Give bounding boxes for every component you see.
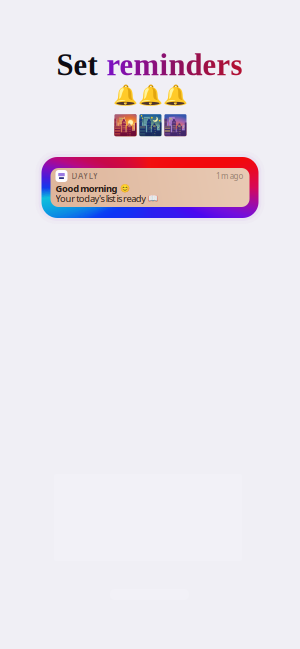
staticText: Your today's list is ready <box>55 192 146 205</box>
staticText: 🔔🔔🔔 <box>112 84 187 106</box>
staticText: Set <box>56 48 105 82</box>
staticText: Good morning <box>55 182 117 195</box>
staticText: DAYLY <box>71 171 98 181</box>
staticText: 🌇🌃🌆 <box>112 114 187 136</box>
staticText: 1m ago <box>216 171 243 181</box>
staticText: 😊 <box>119 184 129 193</box>
button[interactable]: DAYLY <box>41 157 258 218</box>
staticText: 📖 <box>148 194 158 203</box>
